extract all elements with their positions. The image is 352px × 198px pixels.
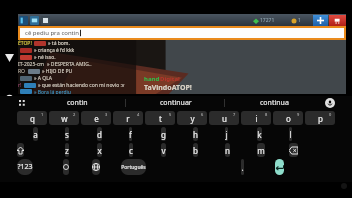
staticText: 1 [298,17,301,24]
button[interactable]: n [225,143,230,157]
button[interactable]: IT-2025-cm [18,61,346,68]
staticText: k [257,129,262,140]
button[interactable]: ?123 [17,159,33,175]
staticText: . [241,162,244,173]
staticText: b [193,145,198,156]
button[interactable]: r! [18,82,346,89]
button[interactable]: 1 [291,17,301,24]
button[interactable]: » A QLA [18,75,346,82]
staticText: 1 [41,112,44,117]
staticText: j [225,129,228,140]
button[interactable]: contin [28,96,126,110]
staticText: ?123 [17,162,33,172]
staticText: g [161,129,166,140]
button[interactable]: b [193,143,198,157]
staticText: hand [144,75,160,83]
button[interactable]: 17271 [253,17,275,24]
button[interactable]: » Bora lá perdiu [18,89,346,94]
staticText: TaVindoATOP! [144,83,192,93]
staticText: RO [18,68,26,75]
button[interactable]: r [113,111,143,125]
button[interactable]: s [65,127,69,141]
button[interactable]: a [33,127,38,141]
staticText: IT-2025-cm [18,61,45,68]
button[interactable]: q [17,111,47,125]
button[interactable]: d [97,127,102,141]
button[interactable]: . [241,159,244,175]
button[interactable]: Panel 3 [41,16,50,25]
button[interactable]: RO [18,68,346,75]
button[interactable]: continuar [126,96,225,110]
button[interactable]: i [241,111,271,125]
button[interactable]: Português [121,159,146,175]
button[interactable]: Panel 2 [30,16,39,25]
staticText: e [94,113,99,124]
staticText: x [97,145,102,156]
staticText: r! [18,82,22,89]
staticText: w [61,113,68,124]
staticText: h [193,129,198,140]
staticText: d [97,129,102,140]
button[interactable]: Emoji [63,159,69,175]
button[interactable]: x [97,143,102,157]
staticText: r [126,113,130,124]
button[interactable]: h [193,127,198,141]
button[interactable]: ÉTOP! [18,40,346,47]
staticText: » tá bom. [48,40,70,47]
button[interactable]: Add [313,15,328,26]
button[interactable]: Voice input [324,97,336,109]
staticText: continuar [160,98,192,108]
button[interactable]: p [305,111,335,125]
button[interactable]: o [273,111,303,125]
button[interactable]: Backspace [289,143,298,157]
button[interactable]: z [65,143,69,157]
staticText: a [33,129,38,140]
button[interactable]: Keyboard settings [16,97,28,109]
staticText: cê pediu pra contin [25,29,80,37]
staticText: y [190,113,195,124]
staticText: 5 [169,112,172,117]
button[interactable]: » criança é fd kkk [18,47,346,54]
button[interactable]: v [161,143,166,157]
staticText: » A QLA [34,75,53,82]
button[interactable]: w [49,111,79,125]
button[interactable]: Panel 1 [19,16,28,25]
button[interactable]: Shift [17,143,24,157]
staticText: Digital [160,75,180,83]
button[interactable]: f [129,127,132,141]
staticText: l [289,129,292,140]
staticText: n [225,145,230,156]
staticText: 3 [105,112,108,117]
staticText: » HIJO DE PU [42,68,73,75]
button[interactable]: continua [225,96,324,110]
staticText: 0 [329,112,332,117]
button[interactable]: k [257,127,262,141]
button[interactable]: j [225,127,228,141]
staticText: » que están haciendo con mi novio :v [38,82,125,89]
staticText: contin [67,98,88,108]
button[interactable]: c [129,143,133,157]
staticText: 17271 [260,17,275,24]
staticText: » né isso. [34,54,56,61]
staticText: 9 [297,112,300,117]
button[interactable]: » né isso. [18,54,346,61]
staticText: u [222,113,227,124]
staticText: c [129,145,133,156]
button[interactable]: y [177,111,207,125]
staticText: v [161,145,166,156]
button[interactable]: g [161,127,166,141]
staticText: continua [260,98,289,108]
button[interactable]: l [289,127,292,141]
button[interactable]: Language [92,159,100,175]
button[interactable]: Cart [329,15,346,26]
staticText: t [159,113,162,124]
staticText: ÉTOP! [18,40,32,47]
staticText: q [30,113,35,124]
button[interactable]: Enter [275,159,284,175]
button[interactable]: u [209,111,239,125]
button[interactable]: m [257,143,265,157]
button[interactable]: cê pediu pra contin [20,28,344,38]
staticText: » DESPERTA AMIG.. [47,61,92,68]
button[interactable]: e [81,111,111,125]
button[interactable]: t [145,111,175,125]
